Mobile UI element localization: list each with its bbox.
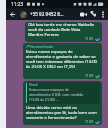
staticText: Você [29,82,38,87]
staticText: Uma dúvida como está os [26,105,77,110]
staticText: 11:23 [11,1,24,8]
button[interactable]: Olá boa tarde me chamo Nathalie [25,22,102,42]
staticText: atendimento e gostaria de saber se [26,54,96,59]
staticText: você da unidade Bela Vista [28,27,81,32]
staticText: atendimento X DEL com medida [29,92,84,97]
button[interactable]: Encaminhada [23,43,102,79]
button[interactable]: Call [88,9,98,19]
staticText: Mardim Ferrero [28,32,59,36]
staticText: Estou novos espaços de [29,87,70,92]
staticText: 11:05 [85,37,94,41]
staticText: 11:09 [85,120,94,124]
button[interactable]: More options [98,10,107,19]
staticText: Olá boa tarde me chamo Nathalie [28,22,95,27]
staticText: +55 92 9452 8... [30,11,64,17]
staticText: você tem interesse diferentes (13:00 [26,59,97,64]
button[interactable]: Video call [78,9,88,19]
staticText: 11:09 [85,74,94,78]
staticText: às 21:00 X DEL) em (7,25) [26,64,75,70]
button[interactable]: Você [23,81,102,125]
button[interactable]: Back [9,11,16,18]
staticText: (13:00 às 21:00) ... [29,97,59,102]
staticText: Estou novos espaços de [26,49,73,54]
staticText: somente o fornecimento? [26,115,77,119]
staticText: atendimentos por lá, tudo bem com a [26,110,100,115]
staticText: Encaminhada [30,44,53,49]
